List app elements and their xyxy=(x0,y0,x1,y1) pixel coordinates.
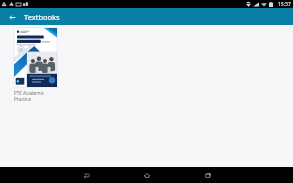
staticText: Textbooks xyxy=(24,12,60,22)
staticText: PTE Academic Practice Test Plus - Vol 2 … xyxy=(14,90,58,102)
button[interactable]: PTE Academic Practice Test Plus - Vol 2 … xyxy=(14,28,58,102)
button[interactable]: Home xyxy=(136,167,158,183)
button[interactable]: Back xyxy=(75,167,97,183)
button[interactable]: Navigate up xyxy=(5,10,19,24)
staticText: 15:37 xyxy=(278,1,291,8)
button[interactable]: Recent apps xyxy=(197,167,219,183)
